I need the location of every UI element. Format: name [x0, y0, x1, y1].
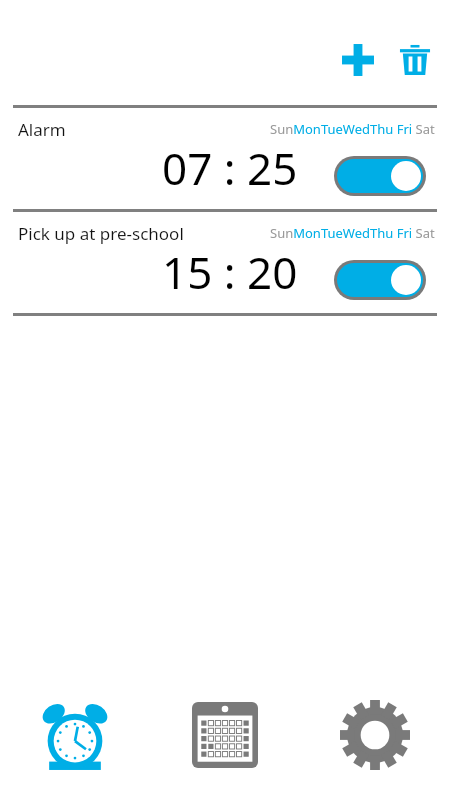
staticText: 07 : 25 — [162, 138, 298, 198]
button[interactable]: Alarms — [0, 670, 150, 800]
button[interactable]: Toggle alarm — [334, 156, 426, 196]
button[interactable]: Settings — [300, 670, 450, 800]
button[interactable]: Alarm — [0, 108, 450, 208]
staticText: Alarm — [18, 118, 66, 141]
staticText: SunMonTueWedThu Fri Sat — [270, 224, 435, 242]
button[interactable]: Pick up at pre-school — [0, 212, 450, 312]
staticText: SunMonTueWedThu Fri Sat — [270, 120, 435, 138]
button[interactable]: Delete alarms — [393, 38, 437, 82]
staticText: 15 : 20 — [162, 242, 298, 302]
staticText: Pick up at pre-school — [18, 222, 184, 245]
button[interactable]: Calendar — [150, 670, 300, 800]
button[interactable]: Toggle alarm — [334, 260, 426, 300]
button[interactable]: Add alarm — [336, 38, 380, 82]
